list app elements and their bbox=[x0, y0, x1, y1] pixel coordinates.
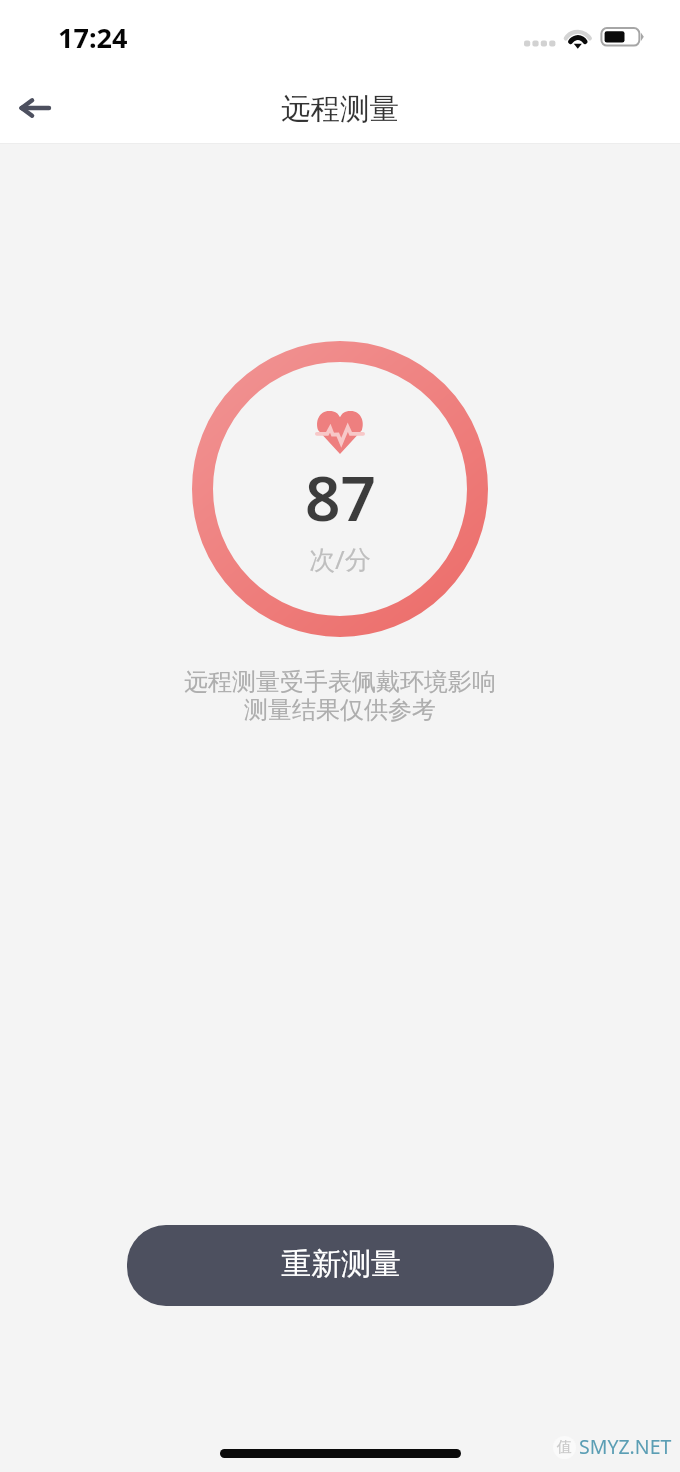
staticText: 远程测量受手表佩戴环境影响 测量结果仅供参考 bbox=[184, 667, 496, 725]
staticText: 87 bbox=[305, 455, 376, 539]
staticText: 次/分 bbox=[309, 541, 371, 577]
staticText: 重新测量 bbox=[281, 1245, 401, 1283]
button[interactable]: 重新测量 bbox=[127, 1225, 554, 1306]
staticText: 17:24 bbox=[58, 19, 128, 56]
button[interactable]: Back bbox=[6, 78, 66, 138]
staticText: 值 bbox=[557, 1438, 572, 1457]
staticText: 远程测量 bbox=[281, 91, 399, 128]
staticText: SMYZ.NET bbox=[579, 1433, 672, 1460]
